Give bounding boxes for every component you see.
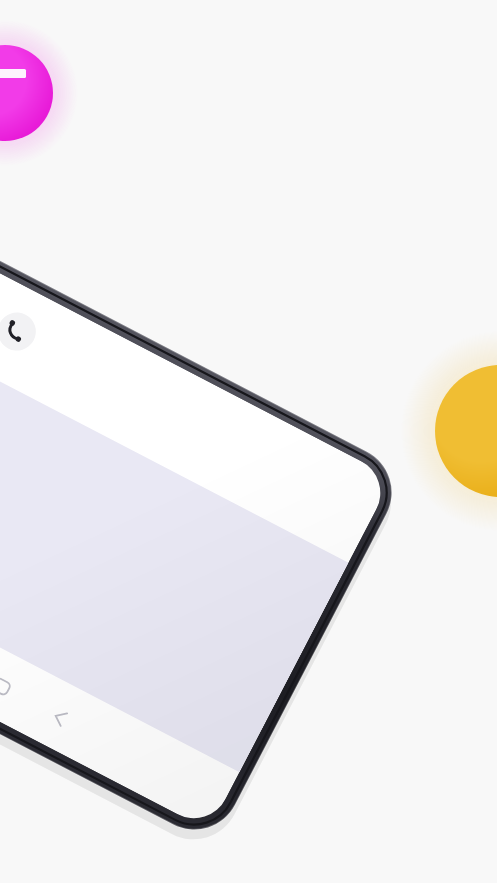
button[interactable]: Phone mockup illustration [0,0,497,883]
